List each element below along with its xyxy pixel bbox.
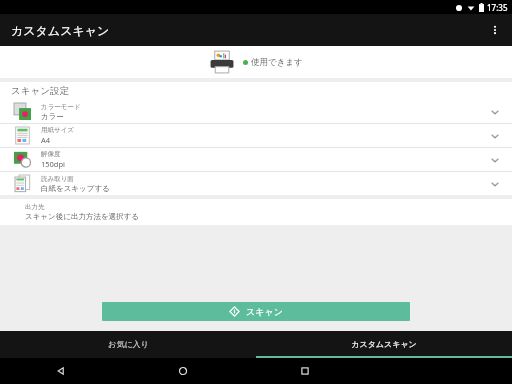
staticText: スキャン [246,306,283,317]
button[interactable]: お気に入り [0,331,256,356]
staticText: 解像度 [41,150,61,158]
button[interactable]: スキャン [102,302,410,321]
button[interactable]: Back [0,358,122,384]
staticText: A4 [41,135,51,145]
button[interactable]: Recent apps [244,358,366,384]
staticText: 出力先 [25,203,45,211]
button[interactable]: More options [478,14,512,46]
button[interactable]: 用紙サイズ [0,124,512,147]
button[interactable]: 解像度 [0,148,512,171]
staticText: 150dpi [41,159,66,169]
staticText: スキャン設定 [11,85,69,97]
staticText: 使用できます [251,57,303,68]
staticText: 17:35 [487,2,508,13]
button[interactable]: カスタムスキャン [256,331,512,356]
staticText: カラー [41,112,64,121]
staticText: 読み取り面 [41,175,74,183]
button[interactable]: カラーモード [0,100,512,123]
staticText: カスタムスキャン [11,23,110,38]
staticText: 白紙をスキップする [41,184,110,193]
staticText: お気に入り [108,339,149,349]
staticText: カラーモード [41,103,81,111]
button[interactable]: 読み取り面 [0,172,512,195]
staticText: 用紙サイズ [41,126,74,134]
button[interactable]: Home [122,358,244,384]
staticText: カスタムスキャン [351,339,417,349]
button[interactable]: 出力先 [0,199,512,225]
staticText: スキャン後に出力方法を選択する [25,212,139,221]
